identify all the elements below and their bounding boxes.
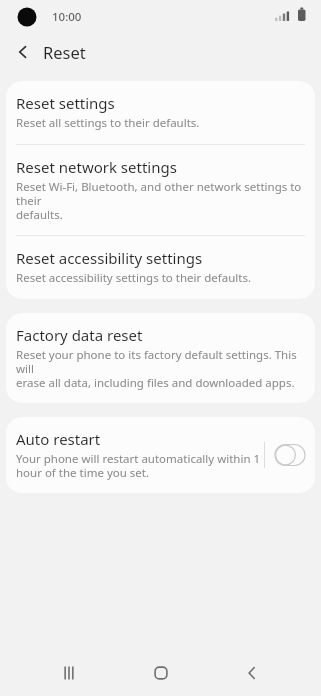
button[interactable]: Auto restart (6, 417, 315, 493)
staticText: Reset settings (16, 93, 115, 113)
staticText: Reset accessibility settings to their de… (16, 270, 251, 286)
staticText: Reset (43, 41, 86, 63)
button[interactable]: Factory data reset (6, 313, 315, 403)
staticText: Reset Wi-Fi, Bluetooth, and other networ… (16, 179, 303, 222)
button[interactable]: Back (6, 35, 40, 69)
button[interactable]: Recents (46, 650, 92, 696)
button[interactable]: Back (229, 650, 275, 696)
button[interactable]: Reset settings (6, 81, 315, 144)
button[interactable]: Reset network settings (6, 145, 315, 235)
staticText: Reset all settings to their defaults. (16, 115, 200, 131)
button[interactable]: Reset accessibility settings (6, 236, 315, 299)
staticText: Reset accessibility settings (16, 248, 203, 268)
staticText: Reset network settings (16, 157, 177, 177)
staticText: 10:00 (52, 9, 82, 25)
button[interactable]: Home (138, 650, 184, 696)
staticText: Auto restart (16, 429, 101, 449)
staticText: Your phone will restart automatically wi… (16, 451, 261, 480)
button[interactable]: Auto restart toggle (273, 443, 307, 467)
staticText: Factory data reset (16, 325, 143, 345)
staticText: Reset your phone to its factory default … (16, 347, 303, 390)
